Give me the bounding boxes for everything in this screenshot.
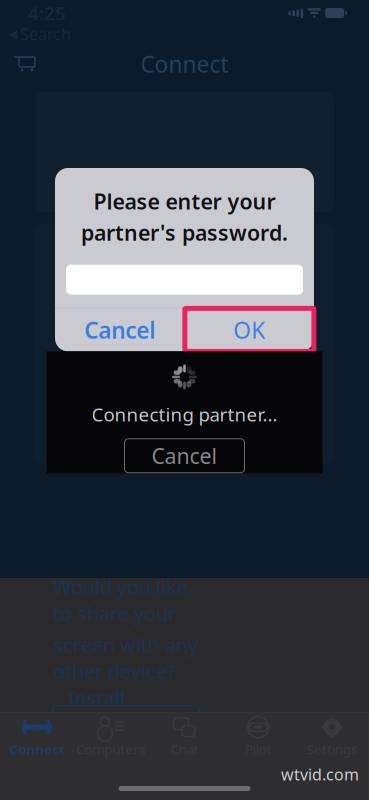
staticText: Connect [9, 740, 64, 758]
staticText: Install QuickSupport [68, 685, 184, 759]
staticText: Cancel [151, 442, 217, 470]
button[interactable]: Connect [0, 712, 74, 761]
button[interactable]: Cancel [55, 308, 184, 351]
staticText: Connecting partner... [91, 402, 277, 427]
staticText: partner's password. [81, 218, 288, 247]
staticText: Chat [170, 740, 198, 758]
staticText: screen with any other device? [53, 631, 198, 685]
staticText: Settings [307, 740, 357, 758]
staticText: Would you like to share your [53, 573, 188, 626]
button[interactable]: OK [185, 308, 314, 351]
staticText: Please enter your [93, 187, 275, 215]
button[interactable]: Shop [6, 45, 44, 83]
staticText: ◀ [8, 27, 17, 41]
staticText: Computers [76, 740, 145, 758]
staticText: Pilot [245, 740, 272, 758]
staticText: Cancel [84, 315, 155, 345]
staticText: OK [233, 315, 265, 345]
staticText: Search [20, 23, 71, 45]
staticText: 4:25 [28, 1, 66, 25]
staticText: wtvid.com [281, 764, 359, 785]
button[interactable]: Install QuickSupport [53, 706, 199, 739]
staticText: Connect [140, 49, 228, 79]
button[interactable]: Cancel [124, 439, 244, 473]
button[interactable]: Settings [295, 712, 369, 761]
